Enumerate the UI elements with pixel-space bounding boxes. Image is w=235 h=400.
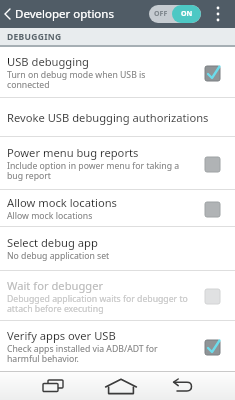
staticText: Turn on debug mode when USB is connected bbox=[7, 69, 146, 90]
staticText: OFF bbox=[154, 9, 168, 19]
button[interactable]: ON bbox=[149, 5, 201, 23]
button[interactable]: Select debug app bbox=[0, 227, 235, 270]
button[interactable]: Revoke USB debugging authorizations bbox=[0, 98, 235, 136]
staticText: ON bbox=[181, 9, 193, 19]
staticText: Revoke USB debugging authorizations bbox=[7, 110, 209, 125]
staticText: Debugged application waits for debugger … bbox=[7, 293, 188, 314]
button[interactable]: Allow mock locations bbox=[0, 190, 235, 226]
button[interactable]: USB debugging bbox=[0, 47, 235, 97]
staticText: Developer options bbox=[15, 6, 114, 22]
staticText: DEBUGGING bbox=[7, 31, 62, 43]
staticText: Wait for debugger bbox=[7, 278, 104, 293]
staticText: Verify apps over USB bbox=[7, 328, 116, 343]
button[interactable] bbox=[161, 372, 201, 400]
button[interactable] bbox=[33, 372, 73, 400]
staticText: Allow mock locations bbox=[7, 210, 93, 222]
button[interactable]: Verify apps over USB bbox=[0, 321, 235, 371]
staticText: Select debug app bbox=[7, 235, 98, 250]
button[interactable] bbox=[201, 0, 235, 28]
staticText: USB debugging bbox=[7, 54, 89, 69]
staticText: Include option in power menu for taking … bbox=[7, 160, 180, 181]
staticText: Allow mock locations bbox=[7, 195, 117, 210]
button[interactable]: Power menu bug reports bbox=[0, 137, 235, 189]
staticText: Power menu bug reports bbox=[7, 145, 139, 160]
staticText: No debug application set bbox=[7, 250, 110, 262]
button[interactable] bbox=[101, 372, 141, 400]
button[interactable]: Wait for debugger bbox=[0, 271, 235, 320]
staticText: Check apps installed via ADB/ADT for har… bbox=[7, 343, 158, 364]
